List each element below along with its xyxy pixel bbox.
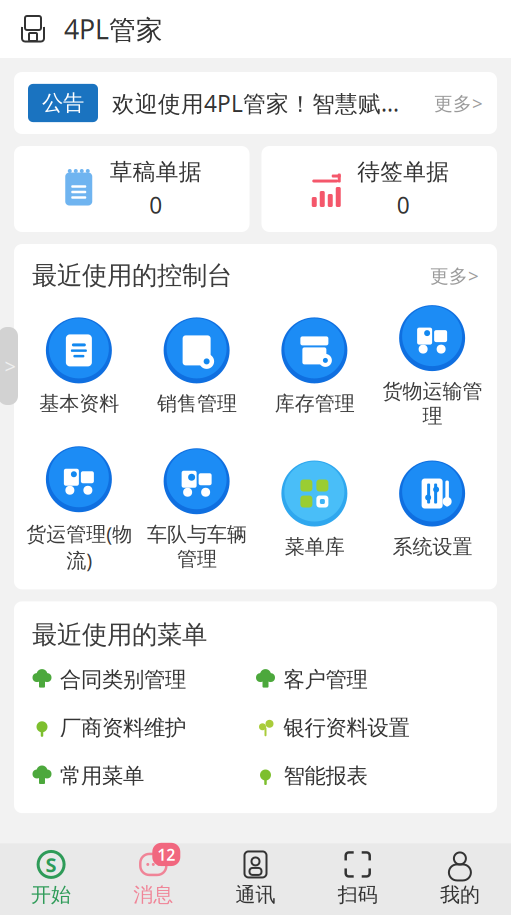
staticText: 最近使用的菜单 xyxy=(32,619,207,650)
staticText: 车队与车辆管理 xyxy=(147,522,247,571)
staticText: S xyxy=(46,851,57,878)
staticText: 智能报表 xyxy=(283,763,367,789)
staticText: 系统设置 xyxy=(392,534,472,559)
button[interactable]: 草稿单据 xyxy=(14,146,249,232)
staticText: 合同类别管理 xyxy=(60,666,186,693)
staticText: 0 xyxy=(149,190,162,220)
staticText: 常用菜单 xyxy=(60,763,144,789)
button[interactable]: 智能报表 xyxy=(255,763,479,789)
button[interactable]: 菜单库 xyxy=(255,460,373,559)
button[interactable]: 货运管理(物流) xyxy=(20,446,138,573)
staticText: 更多> xyxy=(434,91,483,115)
button[interactable]: 待签单据 xyxy=(261,146,497,232)
staticText: 4PL管家 xyxy=(64,11,163,47)
staticText: 最近使用的控制台 xyxy=(32,260,232,291)
staticText: 草稿单据 xyxy=(110,158,202,186)
staticText: 我的 xyxy=(440,882,480,907)
button[interactable]: 销售管理 xyxy=(138,317,256,416)
button[interactable]: 库存管理 xyxy=(255,317,373,416)
button[interactable]: 车队与车辆管理 xyxy=(138,448,256,571)
button[interactable]: 通讯 xyxy=(204,849,307,907)
staticText: 消息 xyxy=(133,882,173,907)
staticText: 更多> xyxy=(430,263,479,288)
button[interactable]: Home xyxy=(18,14,48,44)
staticText: 客户管理 xyxy=(283,666,367,693)
staticText: 通讯 xyxy=(235,882,275,907)
button[interactable]: 系统设置 xyxy=(373,460,491,559)
button[interactable]: S xyxy=(0,849,102,907)
staticText: 欢迎使用4PL管家！智慧赋能、协作共... xyxy=(112,88,406,118)
staticText: 菜单库 xyxy=(284,534,344,559)
button[interactable]: 12 xyxy=(102,849,204,907)
staticText: 销售管理 xyxy=(157,391,237,416)
staticText: 0 xyxy=(397,190,410,220)
button[interactable]: 银行资料设置 xyxy=(255,715,479,741)
staticText: 开始 xyxy=(31,882,71,907)
button[interactable]: 公告 xyxy=(14,72,497,134)
button[interactable]: 基本资料 xyxy=(20,317,138,416)
button[interactable]: 更多> xyxy=(430,263,479,288)
staticText: 货物运输管理 xyxy=(382,379,482,428)
staticText: 12 xyxy=(157,844,175,865)
button[interactable]: 常用菜单 xyxy=(32,763,255,789)
staticText: 待签单据 xyxy=(357,158,449,186)
button[interactable]: 扫码 xyxy=(307,849,409,907)
staticText: 公告 xyxy=(42,90,84,116)
button[interactable]: 货物运输管理 xyxy=(373,305,491,428)
button[interactable]: 厂商资料维护 xyxy=(32,715,255,741)
staticText: 银行资料设置 xyxy=(283,715,409,741)
button[interactable]: 合同类别管理 xyxy=(32,666,255,693)
staticText: 基本资料 xyxy=(39,391,119,416)
button[interactable]: 我的 xyxy=(409,849,511,907)
button[interactable]: 客户管理 xyxy=(255,666,479,693)
staticText: > xyxy=(4,353,15,379)
staticText: 货运管理(物流) xyxy=(26,520,132,573)
staticText: 库存管理 xyxy=(274,391,354,416)
staticText: 厂商资料维护 xyxy=(60,715,186,741)
button[interactable]: Open side panel xyxy=(0,327,18,405)
staticText: 扫码 xyxy=(338,882,378,907)
